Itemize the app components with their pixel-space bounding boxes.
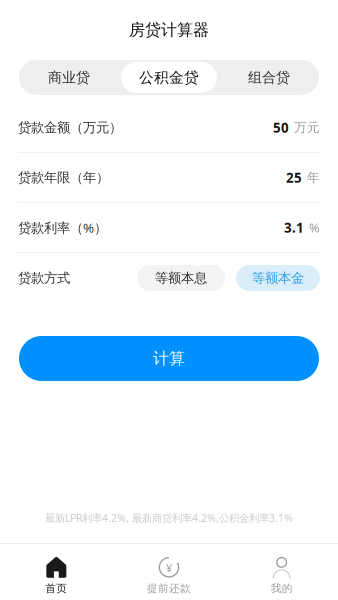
staticText: 我的: [271, 582, 293, 595]
staticText: 年: [307, 169, 320, 185]
staticText: 提前还款: [147, 582, 191, 595]
staticText: 等额本息: [155, 270, 207, 286]
button[interactable]: 公积金贷: [119, 62, 219, 93]
button[interactable]: 首页: [0, 544, 113, 600]
staticText: ¥: [166, 560, 172, 575]
button[interactable]: 等额本金: [236, 265, 320, 291]
staticText: 25: [286, 168, 302, 187]
staticText: 最新LPR利率4.2%, 最新商贷利率4.2%,公积金利率3.1%: [45, 511, 293, 525]
staticText: 贷款金额（万元）: [18, 119, 122, 136]
staticText: 公积金贷: [139, 68, 199, 87]
staticText: 3.1: [284, 218, 304, 237]
button[interactable]: ¥: [113, 544, 225, 600]
staticText: 万元: [294, 119, 320, 135]
staticText: 贷款利率（%）: [18, 218, 107, 237]
button[interactable]: 等额本息: [137, 265, 225, 291]
staticText: 贷款年限（年）: [18, 169, 109, 186]
button[interactable]: 计算: [19, 336, 319, 381]
button[interactable]: 组合贷: [219, 62, 319, 93]
staticText: 贷款方式: [18, 270, 70, 286]
staticText: 组合贷: [248, 69, 290, 86]
staticText: 计算: [153, 348, 185, 369]
staticText: %: [309, 219, 320, 236]
staticText: 等额本金: [252, 270, 304, 286]
staticText: 房贷计算器: [129, 20, 209, 40]
button[interactable]: 商业贷: [19, 62, 119, 93]
button[interactable]: 我的: [225, 544, 338, 600]
staticText: 商业贷: [48, 69, 90, 86]
staticText: 50: [273, 118, 289, 137]
staticText: 首页: [45, 582, 67, 595]
